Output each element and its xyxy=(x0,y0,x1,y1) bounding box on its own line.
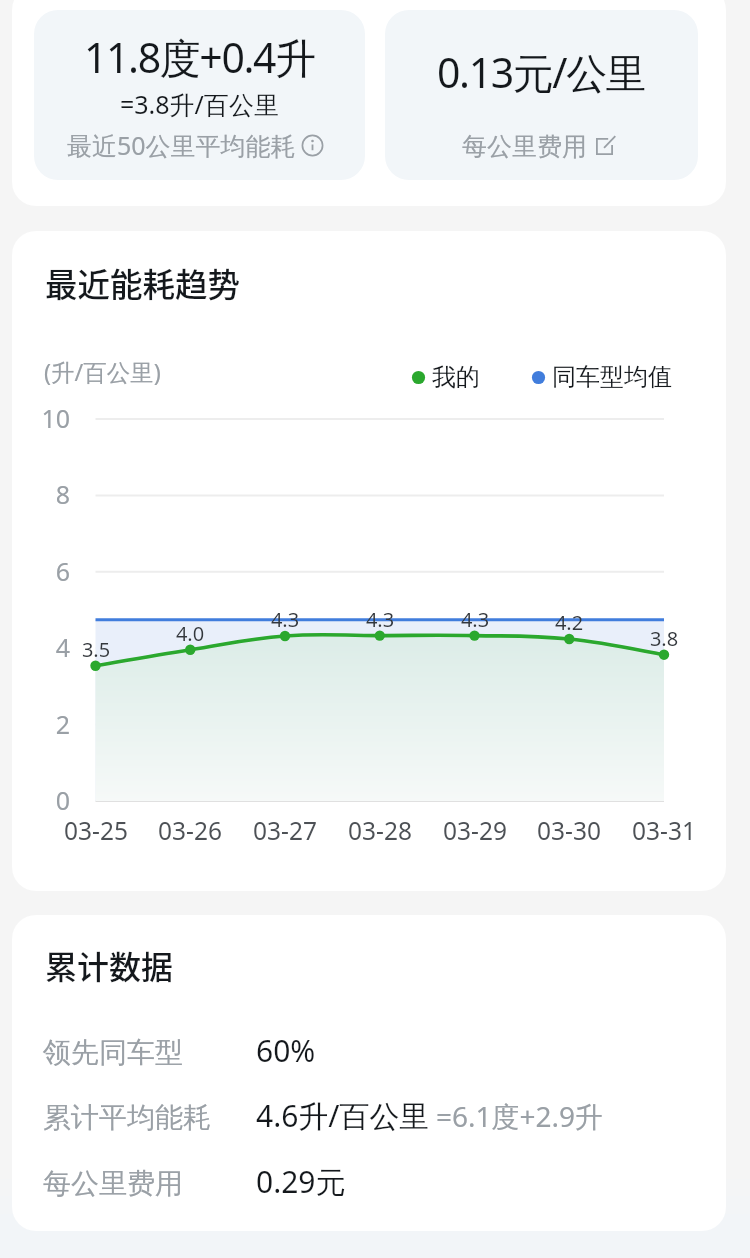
staticText: 每公里费用 xyxy=(462,131,587,162)
staticText: 最近50公里平均能耗 xyxy=(67,128,296,162)
staticText: 0.29元 xyxy=(256,1161,346,1202)
staticText: 11.8度+0.4升 xyxy=(84,29,315,85)
staticText: 4.6升/百公里 xyxy=(256,1095,430,1136)
staticText: 我的 xyxy=(432,362,480,392)
staticText: 8 xyxy=(12,477,70,511)
staticText: 60% xyxy=(256,1030,316,1071)
staticText: 4.3 xyxy=(435,606,515,633)
staticText: 6 xyxy=(12,554,70,588)
staticText: =3.8升/百公里 xyxy=(120,87,279,121)
button[interactable]: 我的 xyxy=(412,362,672,392)
staticText: 03-29 xyxy=(415,814,535,847)
staticText: 0 xyxy=(12,783,70,817)
staticText: 03-27 xyxy=(225,814,345,847)
staticText: 03-30 xyxy=(509,814,629,847)
button[interactable]: 0.13元/公里 xyxy=(385,10,698,180)
staticText: 4 xyxy=(12,630,70,664)
button[interactable]: 每公里费用 xyxy=(43,1161,703,1202)
button[interactable]: 11.8度+0.4升 xyxy=(34,10,365,180)
staticText: 03-31 xyxy=(604,814,724,847)
staticText: 10 xyxy=(12,401,70,435)
staticText: 03-28 xyxy=(320,814,440,847)
staticText: 累计平均能耗 xyxy=(43,1100,211,1135)
staticText: 4.3 xyxy=(340,606,420,633)
staticText: 4.3 xyxy=(245,606,325,633)
button[interactable]: 累计平均能耗 xyxy=(43,1095,703,1136)
other: 编辑每公里费用 xyxy=(593,135,616,158)
staticText: 累计数据 xyxy=(45,942,445,988)
staticText: =6.1度+2.9升 xyxy=(436,1097,604,1135)
staticText: 最近能耗趋势 xyxy=(45,259,445,306)
staticText: 领先同车型 xyxy=(43,1035,183,1070)
staticText: 2 xyxy=(12,707,70,741)
staticText: 每公里费用 xyxy=(43,1166,183,1201)
staticText: 3.8 xyxy=(624,625,704,652)
button[interactable]: 领先同车型 xyxy=(43,1030,703,1071)
other: 能耗说明 xyxy=(301,134,324,157)
staticText: 0.13元/公里 xyxy=(437,44,646,100)
staticText: 03-26 xyxy=(130,814,250,847)
staticText: 同车型均值 xyxy=(552,362,672,392)
staticText: 4.0 xyxy=(150,620,230,647)
staticText: 4.2 xyxy=(529,609,609,636)
staticText: 3.5 xyxy=(56,636,136,663)
staticText: 03-25 xyxy=(36,814,156,847)
staticText: (升/百公里) xyxy=(44,356,344,388)
